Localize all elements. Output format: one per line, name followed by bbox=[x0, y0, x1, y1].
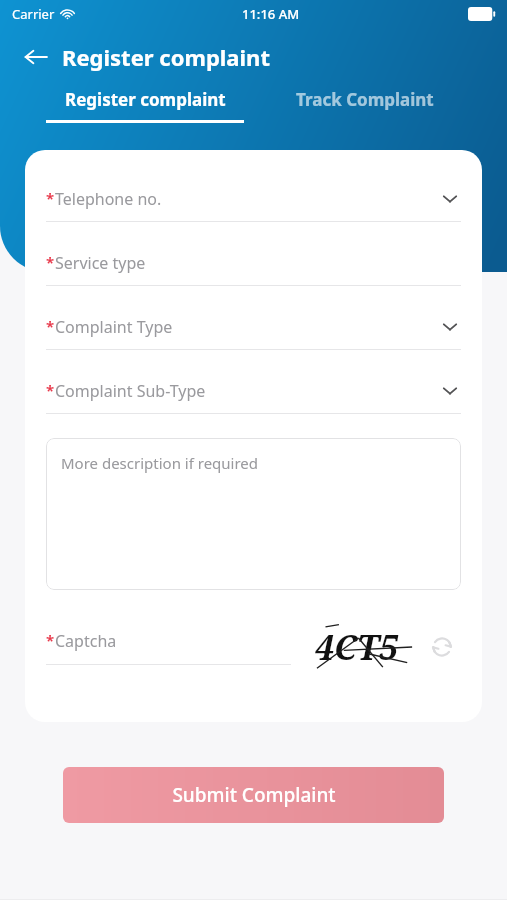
button[interactable]: * bbox=[46, 630, 291, 665]
button[interactable]: Register complaint bbox=[46, 88, 244, 123]
button[interactable]: * bbox=[25, 380, 482, 414]
staticText: More description if required bbox=[61, 453, 259, 473]
staticText: * bbox=[46, 188, 55, 208]
button[interactable]: More description if required bbox=[46, 438, 461, 590]
staticText: 11:16 AM bbox=[242, 5, 300, 23]
staticText: * bbox=[46, 630, 55, 650]
staticText: Register complaint bbox=[62, 42, 270, 72]
staticText: Complaint Type bbox=[55, 316, 173, 338]
staticText: * bbox=[46, 252, 55, 272]
staticText: Service type bbox=[55, 252, 146, 274]
staticText: * bbox=[46, 380, 55, 400]
button[interactable]: * bbox=[25, 188, 482, 222]
staticText: Submit Complaint bbox=[172, 782, 336, 808]
staticText: Captcha bbox=[55, 630, 117, 652]
button[interactable]: * bbox=[25, 316, 482, 350]
button[interactable]: Submit Complaint bbox=[63, 767, 444, 823]
button[interactable]: * bbox=[25, 252, 482, 286]
button[interactable]: Back bbox=[16, 37, 56, 77]
staticText: Complaint Sub-Type bbox=[55, 380, 206, 402]
button[interactable]: Track Complaint bbox=[296, 88, 434, 111]
staticText: Register complaint bbox=[65, 88, 226, 111]
button[interactable]: Refresh captcha bbox=[425, 630, 459, 664]
staticText: Carrier bbox=[12, 5, 55, 23]
staticText: Telephone no. bbox=[55, 188, 162, 210]
staticText: 4CT5 bbox=[315, 624, 398, 670]
staticText: Track Complaint bbox=[296, 88, 434, 111]
staticText: * bbox=[46, 316, 55, 336]
